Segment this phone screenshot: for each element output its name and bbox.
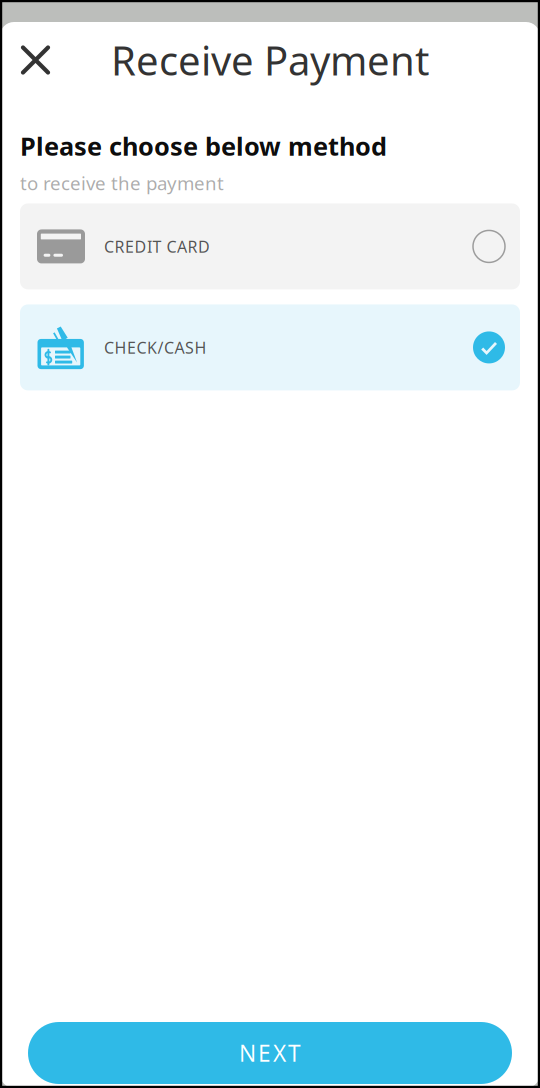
button[interactable]: CREDIT CARD — [20, 203, 520, 289]
staticText: Please choose below method — [20, 129, 387, 163]
button[interactable]: NEXT — [28, 1022, 512, 1084]
button[interactable]: CHECK/CASH — [20, 304, 520, 390]
staticText: Receive Payment — [111, 33, 429, 86]
staticText: CHECK/CASH — [104, 337, 206, 358]
staticText: to receive the payment — [20, 171, 224, 195]
button[interactable]: Close — [0, 30, 67, 89]
staticText: CREDIT CARD — [104, 236, 210, 257]
staticText: NEXT — [239, 1038, 301, 1068]
